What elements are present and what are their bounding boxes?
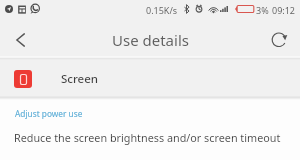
staticText: Screen [61,71,99,87]
staticText: Use details [112,30,189,50]
button[interactable]: Refresh [258,21,300,59]
button[interactable]: Screen [0,61,300,97]
button[interactable]: Back [0,21,40,59]
staticText: 09:12 [272,4,296,16]
staticText: 0.15K/s [146,4,178,16]
staticText: Reduce the screen brightness and/or scre… [14,130,281,145]
staticText: 3% [256,4,269,16]
staticText: Adjust power use [15,108,83,119]
